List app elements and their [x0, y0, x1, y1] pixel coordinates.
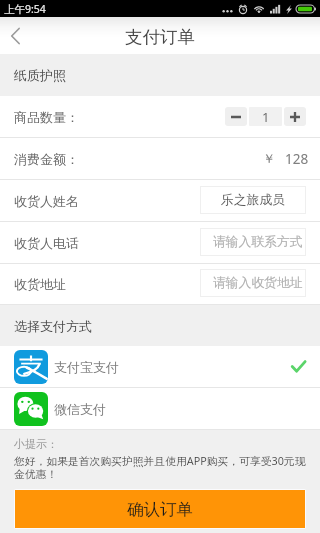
button[interactable]: 微信支付	[0, 388, 320, 429]
staticText: 128	[285, 150, 309, 168]
button[interactable]: Decrease	[225, 107, 247, 126]
button[interactable]: 支付宝支付	[0, 346, 320, 387]
staticText: ￥	[263, 151, 276, 167]
staticText: 支付订单	[125, 26, 195, 48]
staticText: 请输入联系方式	[213, 234, 303, 250]
staticText: 消费金额：	[14, 151, 79, 167]
button[interactable]: 请输入收货地址	[200, 269, 306, 297]
staticText: 商品数量：	[14, 109, 79, 125]
button[interactable]: 乐之旅成员	[200, 186, 306, 214]
button[interactable]: 请输入联系方式	[200, 228, 306, 256]
button[interactable]: 确认订单	[15, 490, 305, 528]
staticText: 选择支付方式	[14, 318, 92, 334]
staticText: 乐之旅成员	[221, 192, 285, 208]
staticText: 收货人姓名	[14, 193, 79, 209]
button[interactable]: Back	[0, 17, 31, 54]
staticText: 收货人电话	[14, 235, 79, 251]
staticText: 收货地址	[14, 276, 66, 292]
staticText: 1	[262, 108, 270, 126]
staticText: 支付宝支付	[54, 359, 119, 375]
staticText: 纸质护照	[14, 67, 66, 83]
staticText: 请输入收货地址	[213, 275, 303, 291]
staticText: 您好，如果是首次购买护照并且使用APP购买，可享受30元现金优惠！	[14, 453, 307, 482]
button[interactable]: Increase	[284, 107, 306, 126]
staticText: 小提示：	[14, 437, 58, 451]
staticText: 确认订单	[127, 499, 193, 520]
staticText: 微信支付	[54, 401, 106, 417]
staticText: 上午9:54	[4, 2, 46, 16]
